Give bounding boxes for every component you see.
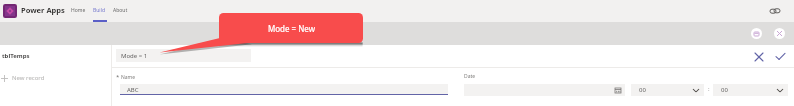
button[interactable]: Mode = 1 bbox=[116, 49, 251, 62]
button[interactable]: 00 bbox=[713, 84, 788, 96]
button[interactable]: Close bbox=[774, 28, 785, 39]
button[interactable]: Power Apps bbox=[3, 4, 17, 18]
button[interactable]: About bbox=[109, 0, 132, 22]
staticText: New record bbox=[12, 74, 45, 82]
button[interactable]: 00 bbox=[631, 84, 704, 96]
staticText: : bbox=[708, 85, 710, 93]
button[interactable]: Restore bbox=[751, 28, 762, 39]
staticText: Mode = New bbox=[268, 23, 315, 34]
staticText: Power Apps bbox=[21, 5, 65, 15]
staticText: Build bbox=[93, 7, 105, 14]
button[interactable]: Build bbox=[89, 0, 112, 22]
staticText: 00 bbox=[639, 86, 646, 94]
staticText: Mode = 1 bbox=[121, 52, 148, 60]
staticText: About bbox=[113, 7, 128, 14]
button[interactable]: New record bbox=[1, 72, 51, 84]
button[interactable]: Copy link bbox=[768, 4, 781, 17]
button[interactable]: Home bbox=[67, 0, 87, 22]
staticText: Home bbox=[71, 7, 86, 14]
button[interactable]: Cancel bbox=[751, 49, 766, 64]
staticText: 00 bbox=[721, 86, 728, 94]
button[interactable]: Save bbox=[773, 49, 788, 64]
button[interactable]: ABC bbox=[120, 84, 448, 95]
staticText: * bbox=[116, 73, 120, 81]
staticText: Date bbox=[464, 73, 476, 80]
staticText: ABC bbox=[127, 86, 139, 94]
button[interactable]: Pick date bbox=[464, 84, 625, 96]
button[interactable]: Mode = New bbox=[219, 13, 363, 43]
staticText: tblTemps bbox=[2, 52, 30, 60]
staticText: Name bbox=[121, 74, 136, 81]
